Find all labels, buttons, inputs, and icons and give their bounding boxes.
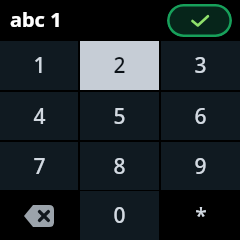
staticText: 7 <box>33 152 46 181</box>
button[interactable]: Confirm <box>167 4 232 37</box>
staticText: 9 <box>194 152 207 181</box>
staticText: 4 <box>33 102 46 131</box>
staticText: 5 <box>113 102 126 131</box>
button[interactable]: 6 <box>161 92 240 140</box>
staticText: 8 <box>113 152 126 181</box>
staticText: abc 1 <box>10 6 62 33</box>
staticText: * <box>195 201 207 230</box>
button[interactable]: 7 <box>0 142 78 190</box>
button[interactable]: 0 <box>80 191 159 240</box>
button[interactable]: * <box>161 191 240 240</box>
button[interactable]: 5 <box>80 92 159 140</box>
button[interactable]: 9 <box>161 142 240 190</box>
staticText: 3 <box>194 51 207 80</box>
staticText: 2 <box>113 51 126 80</box>
button[interactable]: Backspace <box>0 191 78 240</box>
button[interactable]: 4 <box>0 92 78 140</box>
staticText: 0 <box>113 201 126 230</box>
button[interactable]: 1 <box>0 41 78 90</box>
staticText: 1 <box>33 51 46 80</box>
button[interactable]: 2 <box>80 41 159 90</box>
staticText: 6 <box>194 102 207 131</box>
button[interactable]: 8 <box>80 142 159 190</box>
button[interactable]: 3 <box>161 41 240 90</box>
